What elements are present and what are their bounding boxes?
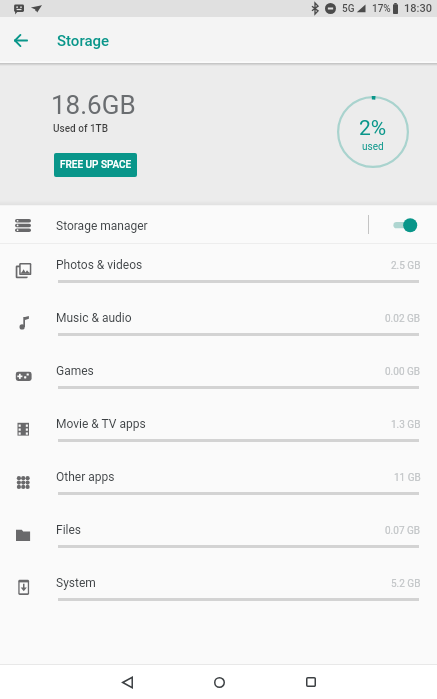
staticText: 11 GB <box>394 472 421 484</box>
staticText: 0.02 GB <box>385 313 421 325</box>
staticText: Storage manager <box>56 219 148 233</box>
staticText: Used of 1TB <box>53 123 108 135</box>
staticText: 18.6GB <box>51 90 136 120</box>
button[interactable]: Music & audio <box>0 297 437 350</box>
staticText: 18:30 <box>404 2 432 15</box>
button[interactable]: Home <box>173 665 265 699</box>
button[interactable]: Movie & TV apps <box>0 403 437 456</box>
button[interactable]: Recent apps <box>265 665 357 699</box>
button[interactable]: Storage manager switch <box>386 214 424 236</box>
staticText: 5G <box>342 3 355 15</box>
button[interactable]: System <box>0 562 437 615</box>
staticText: 1.3 GB <box>391 419 421 431</box>
staticText: Files <box>56 523 82 537</box>
button[interactable]: Other apps <box>0 456 437 509</box>
staticText: used <box>362 141 384 153</box>
staticText: 2% <box>359 116 387 141</box>
staticText: 2.5 GB <box>391 260 421 272</box>
staticText: Music & audio <box>56 311 132 325</box>
staticText: 0.07 GB <box>385 525 421 537</box>
button[interactable]: Files <box>0 509 437 562</box>
button[interactable]: Games <box>0 350 437 403</box>
staticText: 5.2 GB <box>391 578 421 590</box>
staticText: Games <box>56 364 94 378</box>
button[interactable]: FREE UP SPACE <box>54 153 137 177</box>
button[interactable]: Photos & videos <box>0 244 437 297</box>
staticText: Other apps <box>56 470 115 484</box>
staticText: 17% <box>372 3 391 15</box>
staticText: Storage <box>57 32 110 50</box>
staticText: Movie & TV apps <box>56 417 146 431</box>
staticText: 0.00 GB <box>385 366 421 378</box>
button[interactable]: Back <box>81 665 173 699</box>
staticText: System <box>56 576 96 590</box>
button[interactable]: Navigate up <box>4 24 37 57</box>
staticText: FREE UP SPACE <box>60 159 132 171</box>
staticText: Photos & videos <box>56 258 143 272</box>
button[interactable]: Storage manager <box>0 206 437 244</box>
